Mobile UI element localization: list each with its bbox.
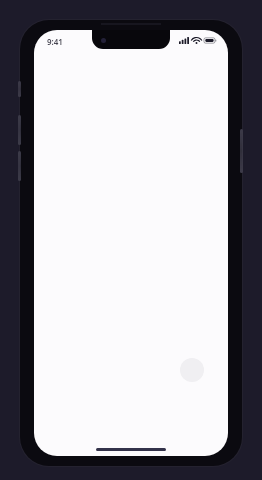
button[interactable]: Add xyxy=(180,358,204,382)
staticText: 9:41 xyxy=(47,36,63,47)
